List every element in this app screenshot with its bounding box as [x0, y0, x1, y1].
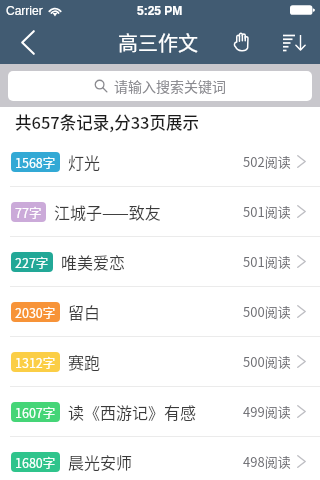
staticText: 灯光	[68, 150, 101, 173]
button[interactable]: Back	[6, 20, 50, 64]
staticText: 499阅读	[243, 402, 291, 421]
button[interactable]: 1607字	[0, 387, 320, 437]
staticText: 留白	[68, 300, 101, 323]
button[interactable]: 请输入搜索关键词	[8, 71, 312, 101]
staticText: 227字	[15, 253, 49, 271]
staticText: 江城子——致友	[54, 200, 161, 223]
staticText: 502阅读	[243, 152, 291, 171]
staticText: 共657条记录,分33页展示	[15, 110, 199, 134]
button[interactable]: 77字	[0, 187, 320, 237]
button[interactable]: 1568字	[0, 137, 320, 187]
button[interactable]: 2030字	[0, 287, 320, 337]
staticText: 唯美爱恋	[61, 250, 126, 273]
staticText: Carrier	[6, 4, 43, 17]
staticText: 赛跑	[68, 350, 101, 373]
staticText: 2030字	[15, 303, 56, 321]
staticText: 500阅读	[243, 302, 291, 321]
staticText: 晨光安师	[68, 450, 133, 473]
staticText: 501阅读	[243, 202, 291, 221]
button[interactable]: 1680字	[0, 437, 320, 480]
staticText: 77字	[15, 203, 42, 221]
staticText: 高三作文	[118, 28, 198, 57]
staticText: 1680字	[15, 453, 56, 471]
staticText: 501阅读	[243, 252, 291, 271]
staticText: 498阅读	[243, 452, 291, 471]
button[interactable]: 1312字	[0, 337, 320, 387]
staticText: 请输入搜索关键词	[114, 76, 226, 96]
button[interactable]: Sort	[273, 20, 317, 64]
staticText: 1312字	[15, 353, 56, 371]
staticText: 1607字	[15, 403, 56, 421]
staticText: 500阅读	[243, 352, 291, 371]
button[interactable]: Select	[219, 20, 263, 64]
staticText: 5:25 PM	[137, 4, 183, 17]
staticText: 读《西游记》有感	[68, 400, 197, 423]
button[interactable]: 227字	[0, 237, 320, 287]
staticText: 1568字	[15, 153, 56, 171]
